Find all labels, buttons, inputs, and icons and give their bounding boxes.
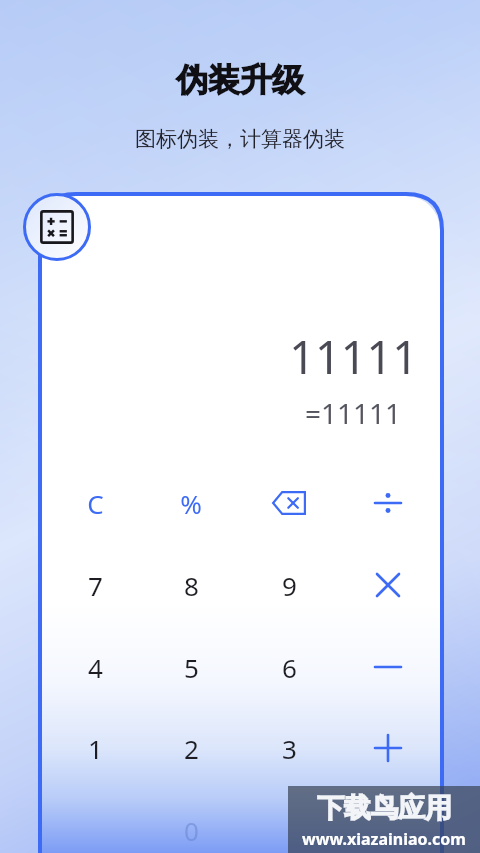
button[interactable]: Plus [340,711,436,785]
button[interactable]: 2 [143,711,239,785]
staticText: 11111 [289,326,418,382]
button[interactable]: 1 [47,711,143,785]
button[interactable]: 6 [241,630,337,704]
staticText: 7 [88,568,103,603]
staticText: =11111 [304,394,401,430]
button[interactable]: 9 [241,548,337,622]
button[interactable]: Multiply [340,548,436,622]
button[interactable]: Divide [340,466,436,540]
staticText: 5 [184,650,199,685]
staticText: www.xiazainiao.com [302,828,466,850]
staticText: 6 [282,650,297,685]
staticText: 下载鸟应用 [317,791,452,825]
button[interactable]: C [47,466,143,540]
staticText: 8 [184,568,199,603]
staticText: C [87,486,104,521]
button[interactable]: 5 [143,630,239,704]
button[interactable]: Backspace [241,466,337,540]
button[interactable]: 4 [47,630,143,704]
staticText: 图标伪装，计算器伪装 [135,126,345,152]
button[interactable]: 7 [47,548,143,622]
staticText: 0 [184,813,199,848]
button[interactable]: % [143,466,239,540]
staticText: 3 [282,731,297,766]
button[interactable]: 8 [143,548,239,622]
staticText: 9 [282,568,297,603]
staticText: % [180,486,202,521]
button[interactable]: 0 [143,793,239,853]
button[interactable]: 3 [241,711,337,785]
button[interactable]: Calculator disguise icon [23,193,91,261]
button[interactable]: Minus [340,630,436,704]
staticText: 4 [88,650,103,685]
staticText: 伪装升级 [176,60,304,100]
staticText: 1 [88,731,103,766]
staticText: 2 [184,731,199,766]
